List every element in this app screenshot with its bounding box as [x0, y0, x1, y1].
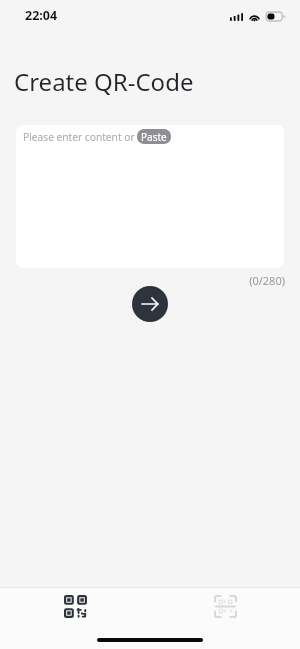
button[interactable]: Please enter content or: [16, 125, 284, 268]
staticText: 22:04: [25, 7, 58, 24]
button[interactable]: Generate: [132, 286, 168, 322]
button[interactable]: Paste: [137, 129, 171, 144]
button[interactable]: Create QR code: [0, 588, 150, 625]
staticText: Paste: [141, 130, 167, 144]
button[interactable]: Scan QR code: [150, 588, 300, 625]
staticText: Create QR-Code: [14, 65, 194, 98]
staticText: (0/280): [0, 273, 285, 288]
staticText: Please enter content or: [23, 130, 135, 144]
